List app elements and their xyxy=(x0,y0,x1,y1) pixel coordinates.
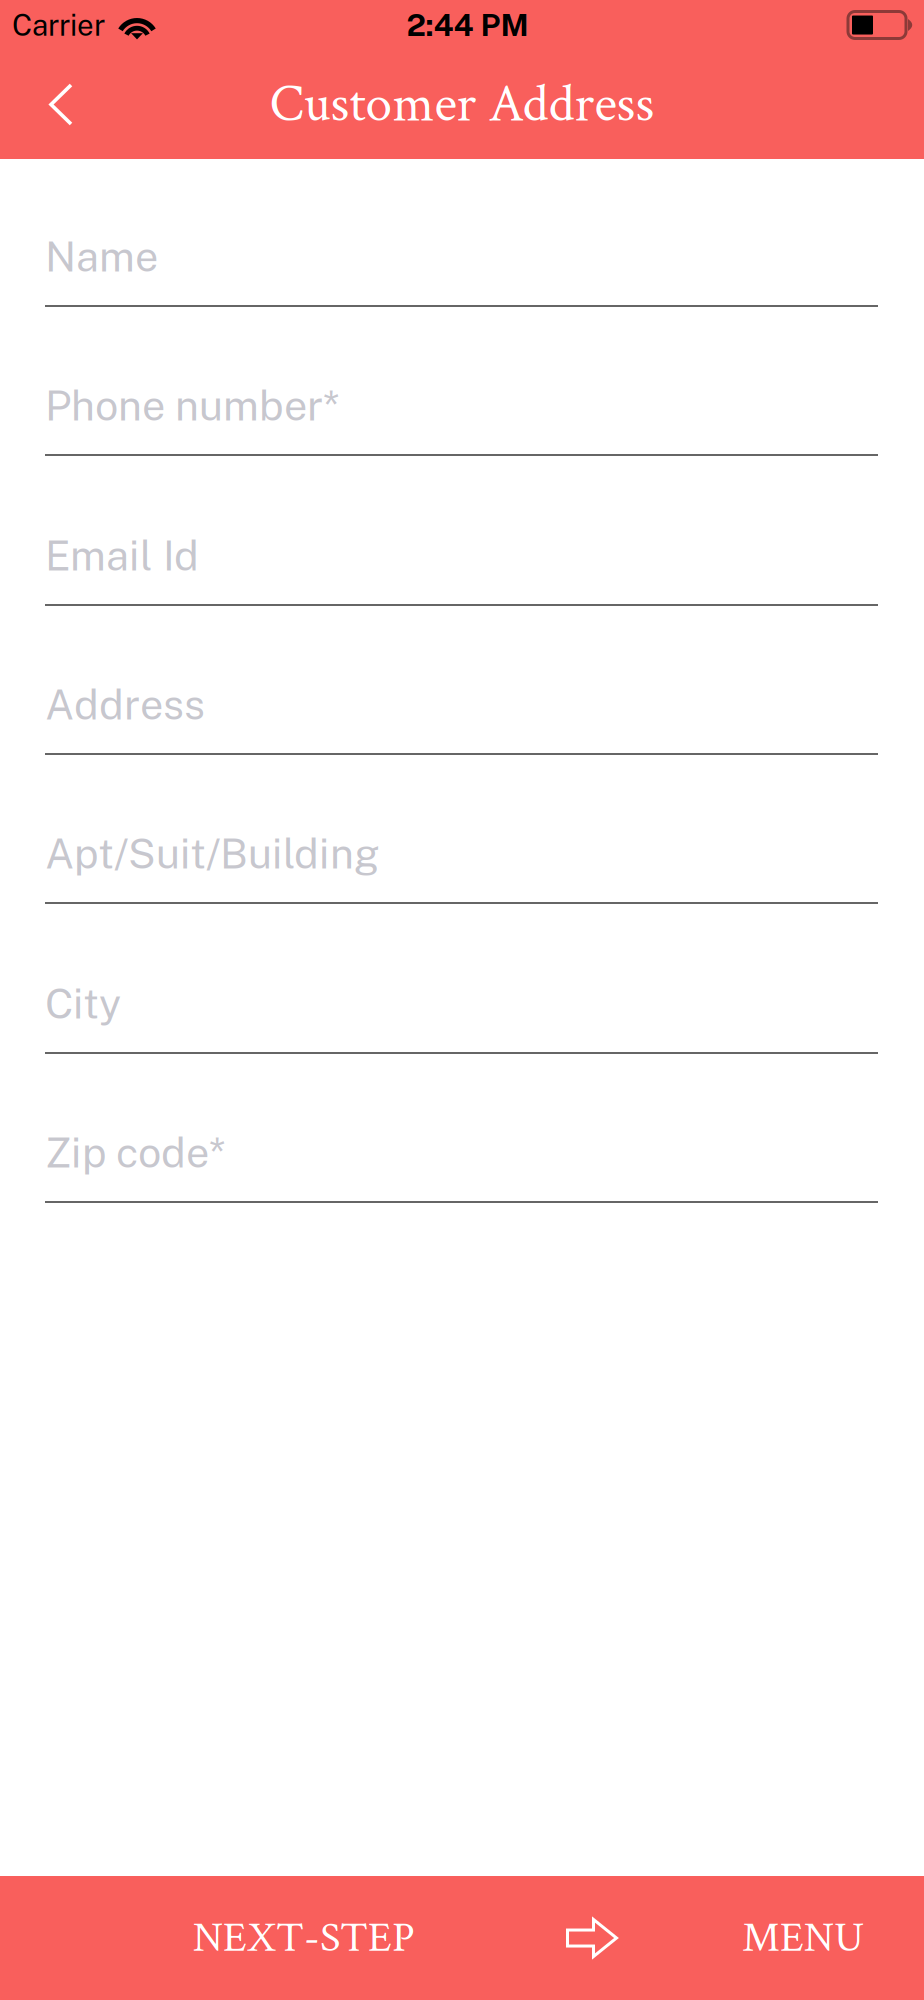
staticText: NEXT-STEP xyxy=(193,1910,415,1966)
staticText: Address xyxy=(45,680,205,729)
staticText: Zip code* xyxy=(45,1128,225,1177)
staticText: 2:44 PM xyxy=(406,7,528,43)
staticText: MENU xyxy=(742,1910,864,1966)
staticText: Phone number* xyxy=(45,381,339,430)
staticText: Email Id xyxy=(45,531,199,580)
staticText: Customer Address xyxy=(269,70,654,139)
staticText: Name xyxy=(45,232,158,281)
button[interactable]: Back xyxy=(0,50,120,159)
staticText: Carrier xyxy=(12,8,105,42)
button[interactable]: NEXT-STEP xyxy=(0,1876,648,2000)
staticText: City xyxy=(45,979,121,1028)
staticText: Apt/Suit/Building xyxy=(45,829,380,878)
button[interactable]: MENU xyxy=(702,1876,924,2000)
